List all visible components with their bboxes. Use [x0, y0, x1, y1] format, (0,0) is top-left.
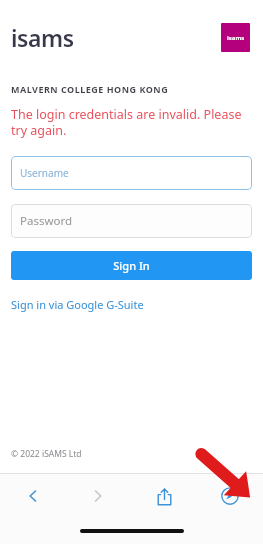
staticText: The login credentials are invalid. Pleas… [11, 106, 249, 138]
staticText: isams [227, 34, 245, 42]
button[interactable]: Back [0, 474, 65, 518]
button[interactable]: Sign in via Google G-Suite [11, 297, 144, 312]
staticText: Sign in via Google G-Suite [11, 297, 144, 312]
staticText: © 2022 iSAMS Ltd [11, 448, 82, 460]
staticText: Username [20, 166, 69, 180]
staticText: isams [11, 22, 74, 53]
staticText: MALVERN COLLEGE HONG KONG [11, 83, 169, 95]
button[interactable]: Sign In [11, 251, 252, 280]
button[interactable]: Share [131, 474, 197, 518]
other: iSAMS badge [221, 23, 250, 52]
button[interactable]: Username [11, 156, 252, 190]
button[interactable]: Tabs [197, 474, 263, 518]
staticText: Password [20, 213, 73, 229]
button[interactable]: Password [11, 204, 252, 238]
staticText: Sign In [113, 258, 150, 273]
button[interactable]: Forward [65, 474, 131, 518]
